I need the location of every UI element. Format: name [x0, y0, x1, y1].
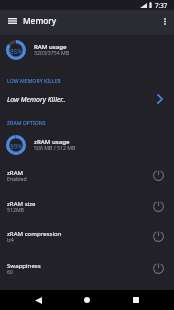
button[interactable]: 99% [0, 131, 174, 158]
staticText: 85% [10, 47, 23, 56]
staticText: 512MB [7, 206, 24, 213]
staticText: ZRAM OPTIONS [7, 119, 46, 126]
button[interactable]: 85% [0, 36, 174, 63]
staticText: Memory [23, 15, 57, 26]
staticText: 3203/3754 MB [34, 49, 70, 56]
staticText: zRAM usage [34, 137, 70, 145]
button[interactable]: zRAM size [0, 194, 174, 218]
staticText: zRAM size [7, 199, 36, 207]
staticText: 7:37 [155, 1, 168, 9]
staticText: LOW MEMORY KILLER [7, 77, 61, 84]
staticText: zRAM [7, 168, 24, 176]
button[interactable]: Toggle zRAM compression [151, 229, 165, 243]
button[interactable]: zRAM [0, 163, 174, 187]
button[interactable]: Home [76, 290, 98, 310]
staticText: 99% [10, 142, 23, 151]
staticText: 506 MB / 512 MB [34, 144, 76, 151]
staticText: Swappiness [7, 261, 41, 269]
staticText: lz4 [7, 236, 14, 243]
button[interactable]: Toggle zRAM size [151, 199, 165, 213]
button[interactable]: Swappiness [0, 256, 174, 280]
button[interactable]: Toggle Swappiness [151, 261, 165, 275]
button[interactable]: More options [157, 13, 173, 29]
staticText: Enabled [7, 175, 27, 182]
button[interactable]: Low Memory Killer.. [0, 90, 174, 108]
staticText: zRAM compression [7, 229, 62, 237]
staticText: RAM usage [34, 42, 67, 50]
button[interactable]: Back [27, 290, 49, 310]
button[interactable]: zRAM compression [0, 224, 174, 248]
button[interactable]: Recents [125, 290, 147, 310]
button[interactable]: Open navigation drawer [4, 12, 21, 29]
staticText: 60 [7, 268, 13, 275]
button[interactable]: Toggle zRAM [151, 168, 165, 182]
staticText: Low Memory Killer.. [7, 95, 157, 104]
